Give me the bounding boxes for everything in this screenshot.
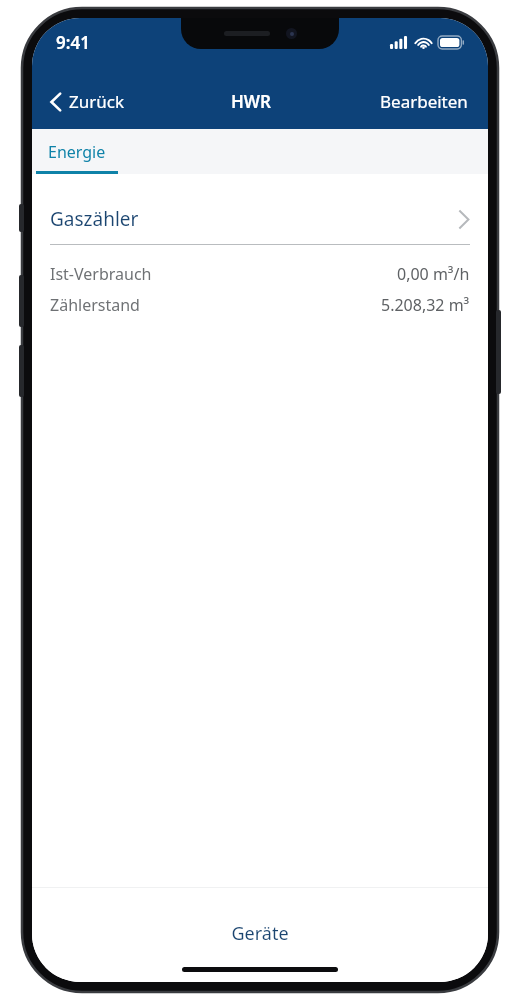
staticText: 0,00 m³/h	[397, 263, 470, 285]
staticText: Geräte	[231, 921, 289, 946]
button[interactable]: Geräte	[32, 888, 488, 978]
button[interactable]: Energie	[32, 130, 122, 174]
button[interactable]: Zurück	[46, 84, 128, 119]
staticText: 5.208,32 m³	[381, 294, 470, 316]
staticText: Bearbeiten	[380, 90, 468, 113]
staticText: 9:41	[56, 31, 90, 54]
button[interactable]: Gaszähler	[32, 202, 488, 245]
button[interactable]: Bearbeiten	[374, 84, 474, 119]
staticText: Zurück	[69, 90, 124, 113]
other: Details öffnen	[457, 209, 470, 230]
staticText: Ist-Verbrauch	[50, 263, 152, 285]
staticText: Gaszähler	[50, 206, 139, 232]
staticText: Energie	[48, 141, 106, 163]
staticText: Zählerstand	[50, 294, 140, 316]
staticText: HWR	[231, 90, 271, 113]
